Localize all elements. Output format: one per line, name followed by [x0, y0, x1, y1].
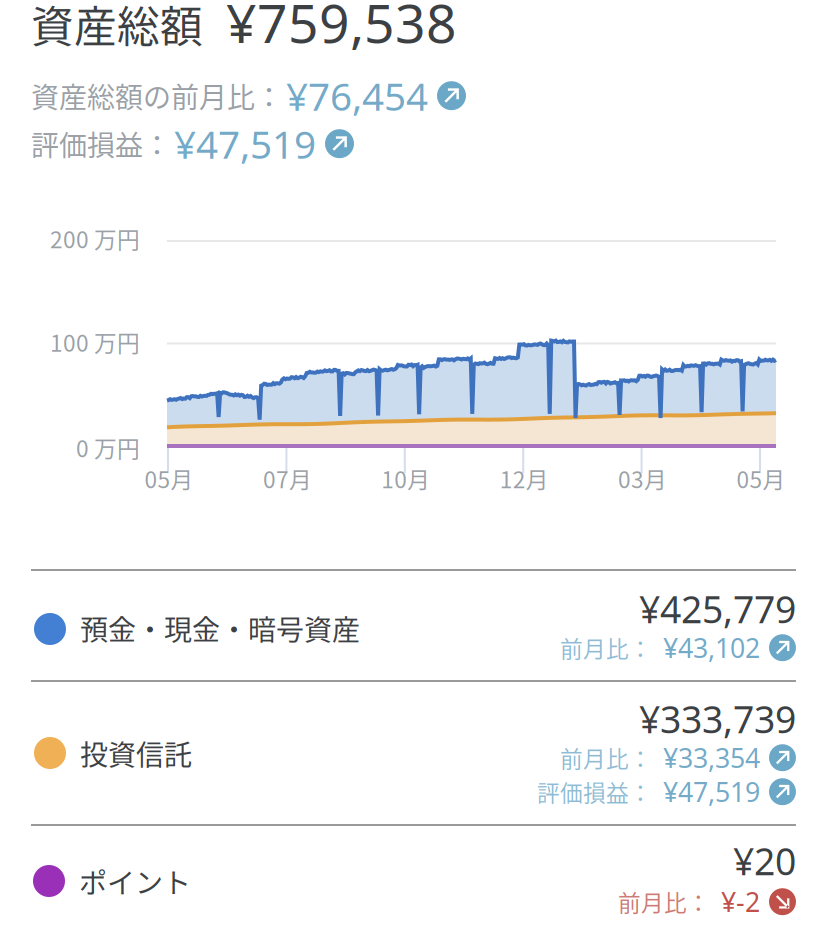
- staticText: 前月比：: [560, 741, 652, 774]
- staticText: 0 万円: [76, 431, 140, 464]
- staticText: 07月: [263, 462, 312, 495]
- staticText: 03月: [618, 462, 667, 495]
- staticText: 評価損益：: [537, 775, 652, 808]
- button[interactable]: 資産総額: [31, 0, 203, 55]
- button[interactable]: 預金・現金・暗号資産: [0, 571, 828, 680]
- staticText: 前月比：: [618, 885, 710, 918]
- staticText: 05月: [144, 462, 193, 495]
- staticText: ¥47,519: [663, 774, 760, 809]
- staticText: 10月: [381, 462, 430, 495]
- staticText: 05月: [736, 462, 785, 495]
- staticText: 投資信託: [80, 733, 192, 773]
- staticText: 前月比：: [560, 631, 652, 664]
- staticText: ¥20: [733, 836, 796, 886]
- button[interactable]: 資産総額の前月比：: [31, 70, 466, 121]
- button[interactable]: 評価損益：: [31, 118, 354, 169]
- button[interactable]: 投資信託: [0, 682, 828, 824]
- staticText: 12月: [500, 462, 549, 495]
- staticText: ¥33,354: [663, 740, 760, 775]
- staticText: ¥43,102: [663, 630, 760, 665]
- staticText: ¥333,739: [639, 694, 796, 744]
- staticText: ¥76,454: [286, 70, 428, 121]
- staticText: 資産総額: [31, 0, 203, 55]
- staticText: ¥759,538: [226, 0, 457, 58]
- staticText: 100 万円: [50, 325, 140, 358]
- staticText: 評価損益：: [31, 123, 171, 164]
- staticText: ¥425,779: [639, 584, 796, 634]
- staticText: 預金・現金・暗号資産: [80, 608, 360, 648]
- staticText: 200 万円: [50, 222, 140, 255]
- staticText: ¥-2: [721, 884, 760, 919]
- staticText: ポイント: [79, 861, 191, 901]
- staticText: 資産総額の前月比：: [31, 75, 283, 116]
- button[interactable]: ポイント: [0, 826, 828, 930]
- staticText: ¥47,519: [174, 118, 316, 169]
